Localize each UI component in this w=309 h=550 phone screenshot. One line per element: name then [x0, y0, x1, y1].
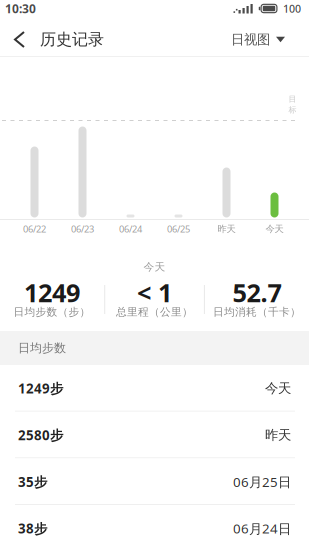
- button[interactable]: 1249步: [0, 365, 309, 412]
- staticText: 06/23: [71, 223, 94, 235]
- staticText: 1249步: [18, 379, 63, 397]
- staticText: 2580步: [18, 426, 63, 444]
- staticText: 昨天: [265, 427, 291, 443]
- staticText: 标: [288, 105, 296, 115]
- staticText: 日均消耗（千卡）: [213, 305, 301, 318]
- button[interactable]: 日视图: [231, 31, 309, 48]
- staticText: 100: [283, 1, 301, 16]
- staticText: 06/24: [119, 223, 142, 235]
- staticText: 总里程（公里）: [116, 305, 193, 318]
- staticText: 日视图: [231, 31, 270, 48]
- staticText: 今天: [143, 260, 165, 273]
- staticText: < 1: [137, 276, 172, 309]
- staticText: 06月24日: [233, 520, 291, 537]
- button[interactable]: 38步: [0, 505, 309, 550]
- staticText: 06月25日: [233, 473, 291, 491]
- staticText: 1249: [24, 276, 80, 309]
- staticText: 今天: [265, 223, 283, 235]
- staticText: 38步: [18, 520, 47, 537]
- button[interactable]: [0, 32, 40, 47]
- button[interactable]: 2580步: [0, 412, 309, 458]
- staticText: 目: [288, 94, 296, 104]
- staticText: 06/22: [23, 223, 46, 235]
- staticText: 52.7: [232, 276, 281, 309]
- staticText: 10:30: [5, 0, 36, 16]
- staticText: 日均步数（步）: [13, 305, 90, 318]
- staticText: 日均步数: [18, 341, 66, 355]
- staticText: 历史记录: [40, 30, 104, 49]
- staticText: 35步: [18, 473, 47, 491]
- staticText: 今天: [265, 380, 291, 397]
- staticText: 昨天: [217, 223, 235, 235]
- button[interactable]: 35步: [0, 458, 309, 505]
- staticText: 06/25: [167, 223, 190, 235]
